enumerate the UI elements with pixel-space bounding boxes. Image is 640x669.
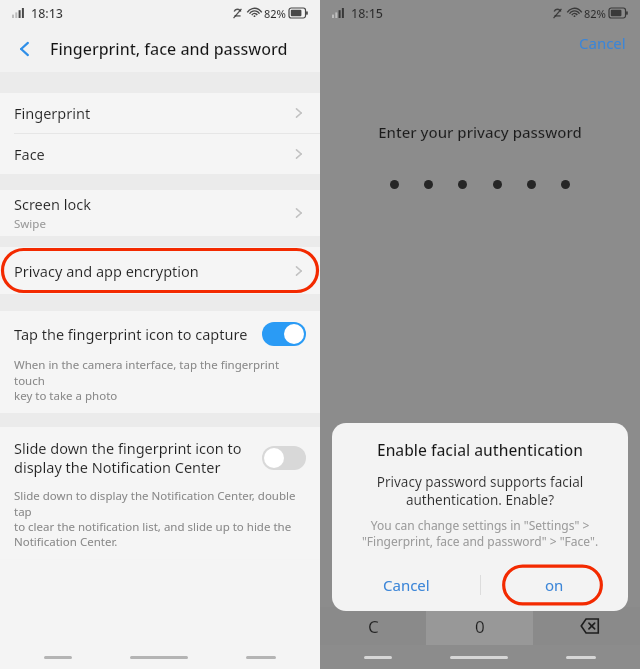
- staticText: Face: [14, 144, 45, 164]
- button[interactable]: Home: [130, 656, 188, 659]
- staticText: Fingerprint, face and password: [50, 38, 288, 60]
- button[interactable]: Screen lock: [0, 190, 320, 236]
- staticText: Swipe: [14, 216, 46, 232]
- staticText: Enable facial authentication: [332, 439, 628, 460]
- staticText: Tap the fingerprint icon to capture: [14, 324, 254, 344]
- button[interactable]: Cancel: [332, 563, 480, 607]
- staticText: You can change settings in "Settings" > …: [332, 517, 628, 549]
- staticText: on: [545, 575, 564, 595]
- staticText: Fingerprint: [14, 103, 91, 123]
- button[interactable]: Fingerprint: [0, 93, 320, 133]
- staticText: Screen lock: [14, 194, 91, 214]
- button[interactable]: Face: [0, 134, 320, 174]
- staticText: Privacy and app encryption: [14, 261, 199, 281]
- staticText: 82%: [264, 6, 286, 21]
- staticText: Slide down the fingerprint icon to displ…: [14, 438, 254, 477]
- button[interactable]: Slide down the fingerprint icon to displ…: [0, 427, 320, 488]
- button[interactable]: Cancel: [579, 33, 626, 53]
- button[interactable]: C: [320, 607, 426, 645]
- button[interactable]: Backspace: [533, 607, 640, 645]
- button[interactable]: Home: [450, 656, 508, 659]
- button[interactable]: Back: [364, 656, 392, 659]
- button[interactable]: Privacy and app encryption: [0, 247, 320, 294]
- staticText: Cancel: [383, 575, 430, 595]
- staticText: 18:13: [31, 5, 64, 22]
- button[interactable]: Back: [44, 656, 72, 659]
- staticText: 18:15: [351, 5, 384, 22]
- button[interactable]: Recents: [246, 656, 276, 659]
- staticText: Slide down to display the Notification C…: [14, 488, 304, 549]
- staticText: C: [368, 615, 379, 638]
- button[interactable]: 0: [426, 607, 533, 645]
- button[interactable]: Recents: [566, 656, 596, 659]
- button[interactable]: on: [480, 563, 628, 607]
- staticText: Enter your privacy password: [320, 122, 640, 142]
- button[interactable]: Tap the fingerprint icon to capture: [0, 311, 320, 357]
- staticText: Privacy password supports facial authent…: [332, 473, 628, 509]
- staticText: When in the camera interface, tap the fi…: [14, 357, 304, 403]
- button[interactable]: Back: [8, 32, 42, 66]
- staticText: 82%: [584, 6, 606, 21]
- staticText: 0: [475, 615, 485, 638]
